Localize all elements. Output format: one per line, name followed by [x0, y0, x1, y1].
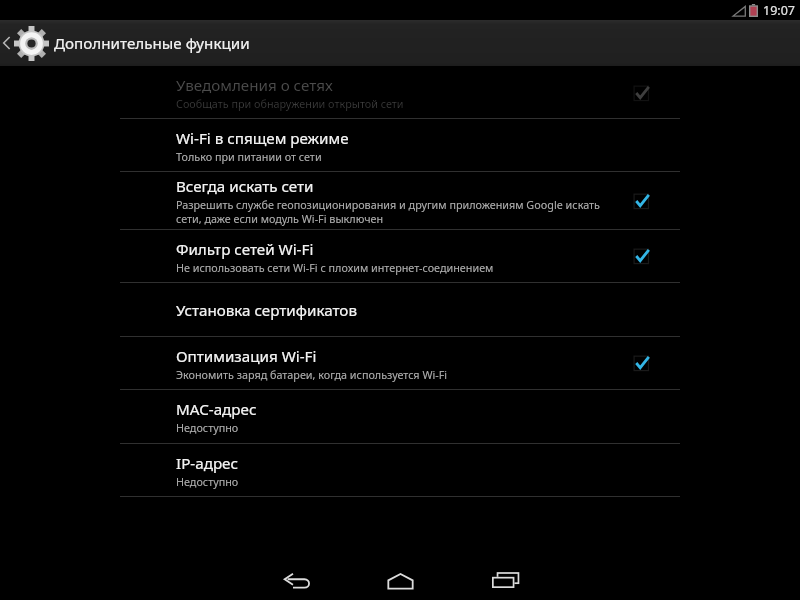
staticText: Установка сертификатов: [176, 300, 357, 321]
button[interactable]: Фильтр сетей Wi-Fi: [0, 230, 800, 282]
button[interactable]: Back: [243, 561, 348, 600]
staticText: Недоступно: [176, 474, 239, 489]
staticText: Wi-Fi в спящем режиме: [176, 128, 349, 149]
staticText: Фильтр сетей Wi-Fi: [176, 239, 314, 260]
button[interactable]: Recent apps: [453, 561, 558, 600]
button[interactable]: IP-адрес: [0, 444, 800, 496]
staticText: Всегда искать сети: [176, 176, 314, 197]
staticText: IP-адрес: [176, 453, 238, 474]
staticText: Сообщать при обнаружении открытой сети: [176, 96, 404, 111]
button[interactable]: Уведомления о сетях: [0, 67, 800, 118]
staticText: Уведомления о сетях: [176, 75, 333, 96]
button[interactable]: MAC-адрес: [0, 390, 800, 443]
staticText: Разрешить службе геопозиционирования и д…: [176, 197, 600, 226]
button[interactable]: Up: [0, 20, 250, 66]
staticText: Экономить заряд батареи, когда используе…: [176, 367, 448, 382]
staticText: Недоступно: [176, 420, 239, 435]
staticText: Дополнительные функции: [54, 33, 250, 54]
staticText: MAC-адрес: [176, 399, 257, 420]
button[interactable]: Home: [348, 561, 453, 600]
staticText: Оптимизация Wi-Fi: [176, 346, 317, 367]
staticText: Только при питании от сети: [176, 149, 322, 164]
staticText: Не использовать сети Wi-Fi с плохим инте…: [176, 260, 494, 275]
button[interactable]: Wi-Fi в спящем режиме: [0, 119, 800, 171]
button[interactable]: Установка сертификатов: [0, 283, 800, 336]
button[interactable]: Всегда искать сети: [0, 172, 800, 229]
button[interactable]: Оптимизация Wi-Fi: [0, 337, 800, 389]
staticText: 19:07: [763, 2, 795, 19]
